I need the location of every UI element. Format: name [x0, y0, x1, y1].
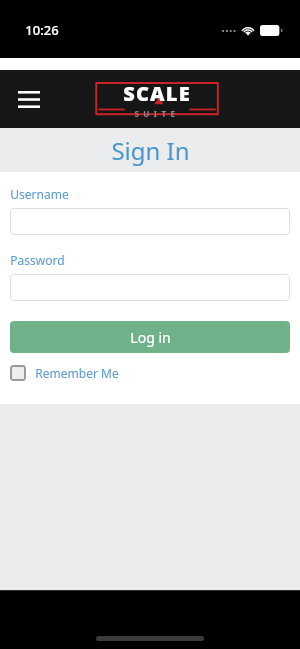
button[interactable]: Remember Me [10, 365, 119, 381]
button[interactable] [10, 208, 290, 235]
staticText: Log in [130, 328, 171, 347]
staticText: SCALE [123, 80, 191, 107]
staticText: Password [10, 252, 65, 268]
staticText: Username [10, 186, 69, 202]
staticText: Remember Me [35, 365, 119, 381]
button[interactable]: Scale Suite home [91, 79, 223, 119]
button[interactable] [10, 274, 290, 301]
staticText: 10:26 [25, 21, 59, 39]
button[interactable]: Open menu [10, 80, 48, 118]
staticText: Sign In [111, 134, 190, 167]
staticText: SUITE [134, 108, 180, 119]
button[interactable]: Log in [10, 321, 290, 353]
